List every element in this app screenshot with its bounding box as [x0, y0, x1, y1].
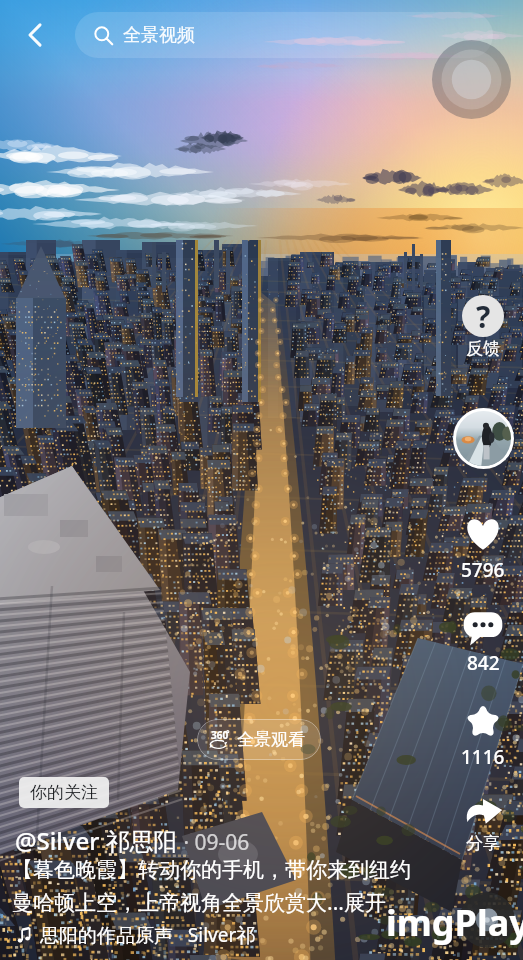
staticText: 【暮色晚霞】转动你的手机，带你来到纽约: [12, 857, 411, 883]
button[interactable]: Author avatar: [441, 408, 523, 472]
staticText: 全景视频: [123, 24, 195, 47]
button[interactable]: Favorite: [441, 698, 523, 776]
staticText: 思阳的作品原声 Silver祁: [40, 922, 256, 948]
staticText: ?: [476, 296, 491, 337]
staticText: 360: [211, 728, 229, 742]
staticText: 分享: [466, 833, 500, 854]
button[interactable]: Like: [441, 511, 523, 589]
button[interactable]: Music disc: [459, 892, 515, 948]
staticText: 842: [467, 650, 500, 676]
button[interactable]: 【暮色晚霞】转动你的手机，带你来到纽约: [12, 857, 422, 917]
staticText: 5796: [461, 557, 505, 583]
button[interactable]: 360: [197, 719, 321, 760]
button[interactable]: Back: [12, 12, 58, 58]
staticText: @Silver 祁思阳: [15, 824, 178, 857]
button[interactable]: 你的关注: [19, 777, 109, 808]
button[interactable]: 全景视频: [75, 12, 493, 58]
button[interactable]: 思阳的作品原声 Silver祁: [16, 922, 256, 948]
staticText: 反馈: [466, 338, 500, 359]
button[interactable]: Comment: [441, 604, 523, 682]
staticText: 你的关注: [30, 782, 98, 803]
staticText: imgPlay: [386, 898, 523, 947]
button[interactable]: @Silver 祁思阳: [15, 824, 250, 857]
button[interactable]: Share: [441, 787, 523, 867]
button[interactable]: Gyroscope orientation: [432, 40, 511, 119]
staticText: 曼哈顿上空，上帝视角全景欣赏大...展开: [12, 888, 386, 917]
staticText: · 09-06: [178, 828, 250, 857]
staticText: 1116: [461, 744, 505, 770]
button[interactable]: Feedback: [441, 295, 523, 375]
staticText: 全景观看: [237, 729, 305, 750]
